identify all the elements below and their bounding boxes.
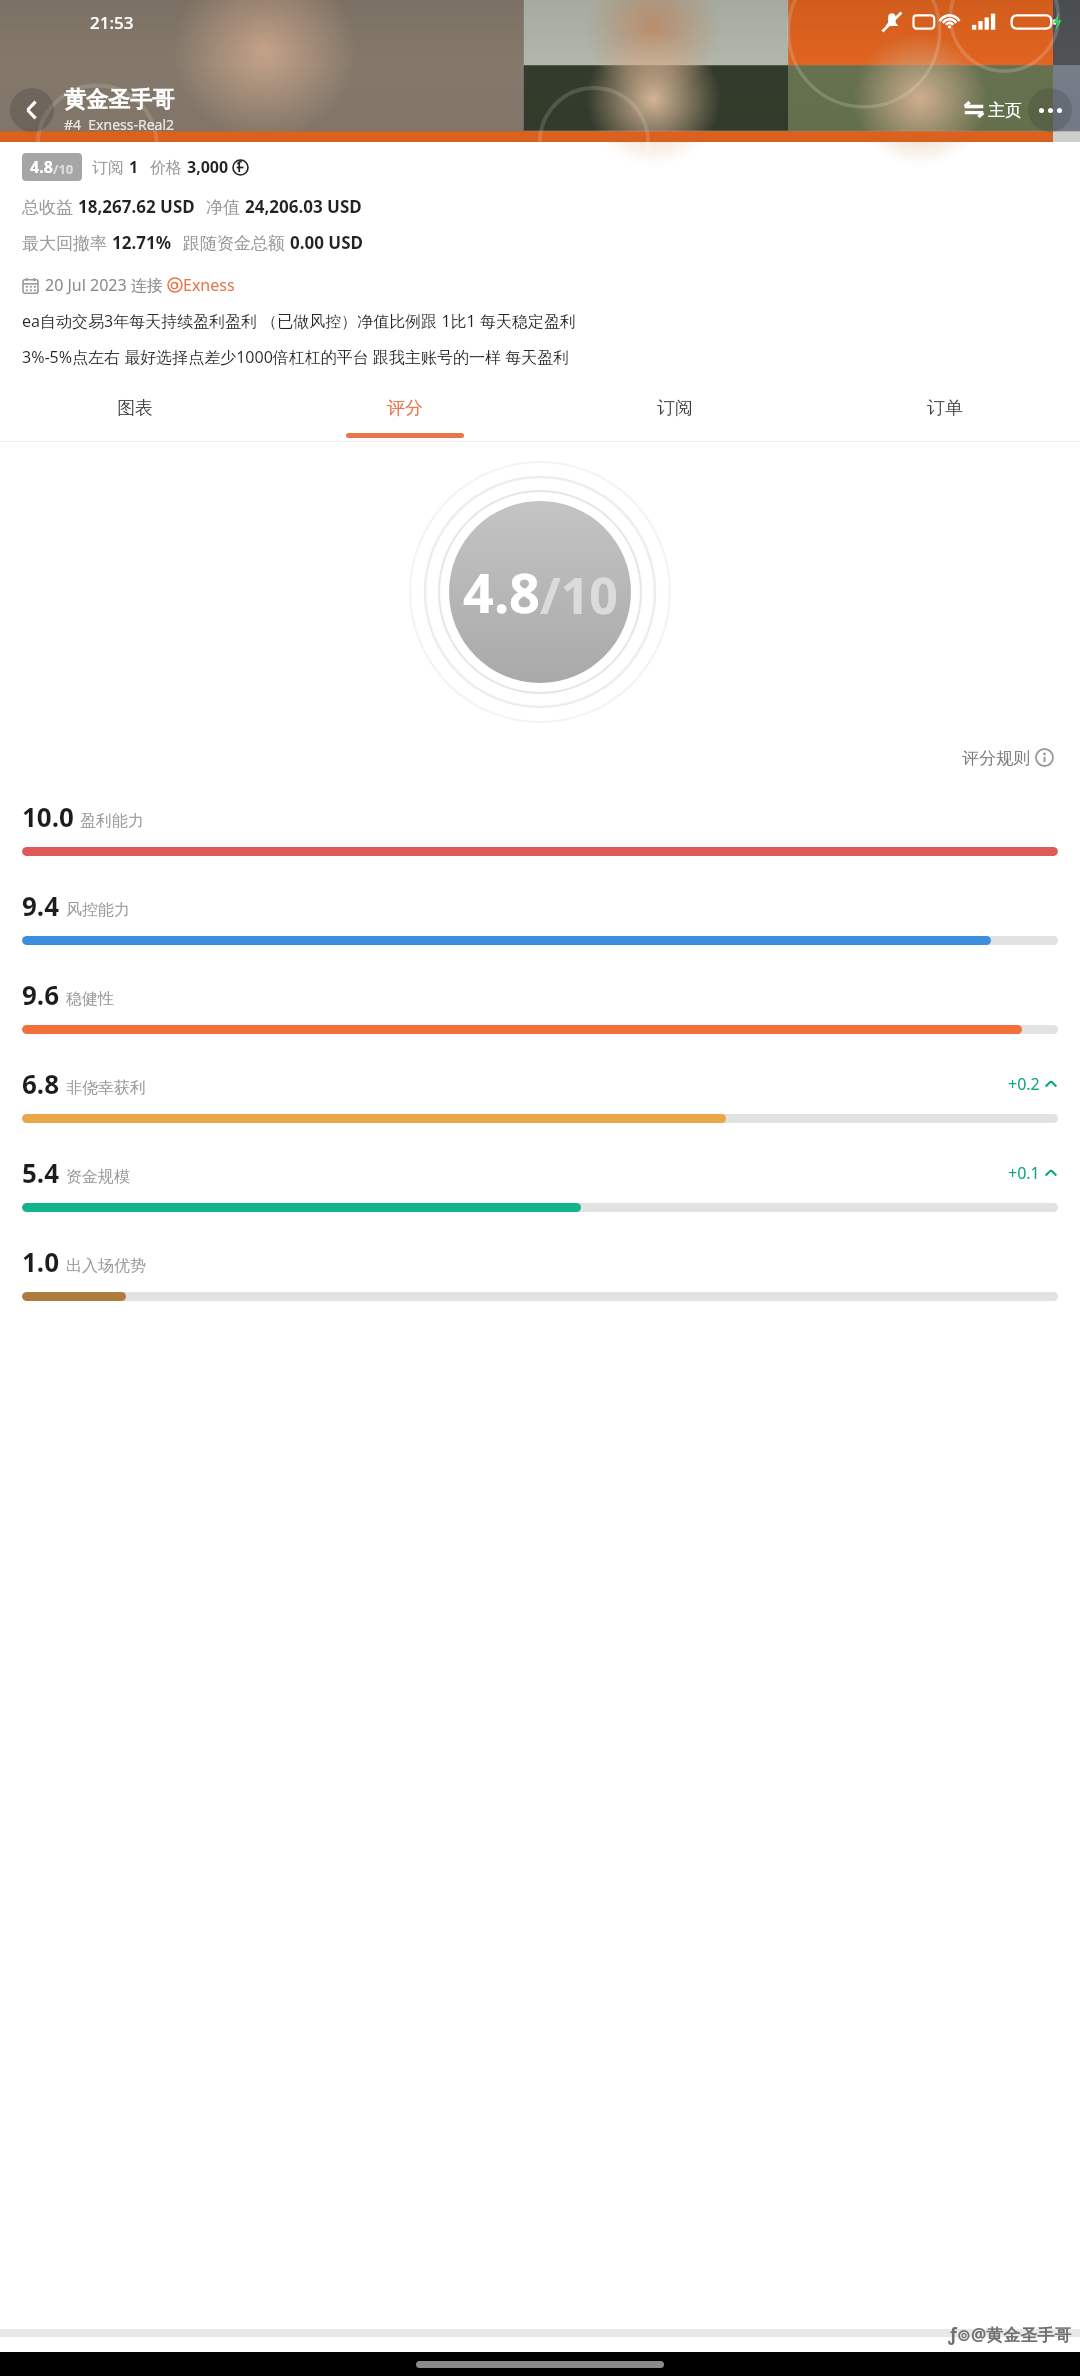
staticText: 最大回撤率: [22, 231, 112, 254]
button[interactable]: Back: [10, 88, 54, 132]
staticText: 3,000: [187, 156, 229, 178]
staticText: 订阅: [657, 397, 693, 420]
staticText: /10: [540, 561, 618, 629]
staticText: +0.1: [1008, 1162, 1040, 1184]
button[interactable]: 评分: [270, 375, 540, 441]
staticText: 图表: [117, 397, 153, 420]
staticText: 订单: [927, 397, 963, 420]
staticText: 风控能力: [66, 900, 130, 920]
staticText: 5.4: [22, 1155, 60, 1190]
staticText: 跟随资金总额: [183, 231, 290, 254]
staticText: 订阅: [92, 156, 129, 178]
staticText: /10: [53, 160, 74, 178]
staticText: 主页: [988, 100, 1022, 121]
staticText: 价格: [150, 156, 187, 178]
staticText: 3%-5%点左右 最好选择点差少1000倍杠杠的平台 跟我主账号的一样 每天盈利: [22, 346, 570, 368]
staticText: 4.8: [30, 156, 53, 178]
staticText: +0.2: [1008, 1073, 1040, 1095]
staticText: 12.71%: [112, 231, 172, 254]
button[interactable]: 主页: [959, 93, 1026, 127]
staticText: 4.8: [463, 555, 540, 629]
staticText: 18,267.62 USD: [78, 195, 195, 218]
staticText: 21:53: [90, 11, 134, 34]
staticText: ea自动交易3年每天持续盈利盈利 （已做风控）净值比例跟 1比1 每天稳定盈利: [22, 310, 576, 332]
staticText: 稳健性: [66, 989, 114, 1009]
staticText: 总收益: [22, 195, 78, 218]
staticText: 评分: [387, 397, 423, 420]
staticText: #4 Exness-Real2: [64, 115, 175, 134]
staticText: 6.8: [22, 1066, 60, 1101]
button[interactable]: 评分规则: [958, 742, 1058, 773]
staticText: 评分规则: [962, 746, 1035, 769]
button[interactable]: 图表: [0, 375, 270, 441]
staticText: 出入场优势: [66, 1256, 146, 1276]
staticText: 黄金圣手哥: [64, 86, 174, 114]
staticText: 24,206.03 USD: [245, 195, 362, 218]
staticText: ƒ⊚@黄金圣手哥: [948, 2323, 1072, 2346]
staticText: 盈利能力: [80, 811, 144, 831]
staticText: 1.0: [22, 1244, 60, 1279]
button[interactable]: Exness: [167, 274, 235, 296]
staticText: 1: [129, 156, 139, 178]
staticText: 0.00 USD: [290, 231, 364, 254]
staticText: 净值: [206, 195, 245, 218]
staticText: 9.6: [22, 977, 60, 1012]
button[interactable]: 订单: [810, 375, 1080, 441]
staticText: 非侥幸获利: [66, 1078, 146, 1098]
button[interactable]: 订阅: [540, 375, 810, 441]
staticText: 10.0: [22, 799, 74, 834]
staticText: 资金规模: [66, 1167, 130, 1187]
staticText: 20 Jul 2023 连接: [45, 274, 167, 296]
staticText: Exness: [183, 274, 235, 296]
button[interactable]: More options: [1028, 88, 1072, 132]
staticText: 9.4: [22, 888, 60, 923]
